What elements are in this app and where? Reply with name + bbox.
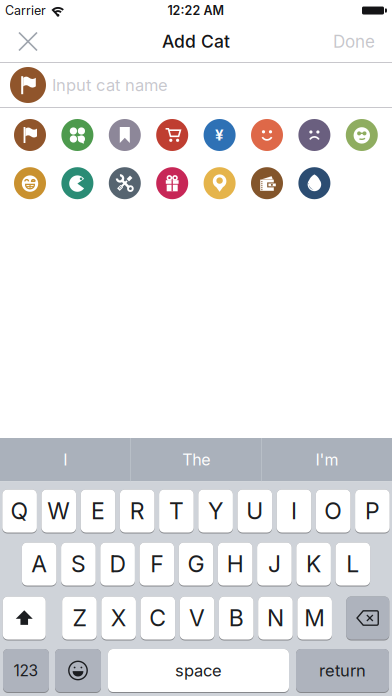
- button[interactable]: Z: [62, 596, 97, 640]
- staticText: C: [149, 604, 166, 632]
- staticText: T: [169, 497, 184, 525]
- button[interactable]: Cool face: [346, 119, 378, 151]
- button[interactable]: H: [218, 542, 252, 586]
- button[interactable]: P: [355, 489, 390, 533]
- staticText: F: [150, 550, 163, 578]
- staticText: space: [175, 660, 222, 680]
- button[interactable]: K: [296, 542, 331, 586]
- staticText: Y: [208, 497, 223, 525]
- button[interactable]: 123: [3, 649, 49, 693]
- button[interactable]: return: [296, 649, 389, 693]
- staticText: return: [319, 660, 366, 680]
- staticText: Done: [333, 31, 375, 52]
- staticText: P: [365, 497, 380, 525]
- staticText: M: [304, 604, 325, 632]
- button[interactable]: The: [131, 438, 261, 481]
- button[interactable]: Clover: [61, 119, 93, 151]
- staticText: I: [291, 497, 297, 525]
- staticText: K: [306, 550, 321, 578]
- staticText: Q: [11, 497, 29, 525]
- button[interactable]: space: [108, 649, 289, 693]
- button[interactable]: Yen: [204, 119, 236, 151]
- button[interactable]: V: [180, 596, 214, 640]
- button[interactable]: X: [101, 596, 136, 640]
- button[interactable]: N: [258, 596, 293, 640]
- button[interactable]: S: [61, 542, 96, 586]
- button[interactable]: Emoji: [55, 649, 101, 693]
- button[interactable]: E: [81, 489, 115, 533]
- staticText: Input cat name: [52, 75, 168, 95]
- staticText: A: [31, 550, 47, 578]
- button[interactable]: Shopping cart: [156, 119, 188, 151]
- button[interactable]: Tools: [109, 167, 141, 199]
- staticText: B: [229, 604, 244, 632]
- button[interactable]: Smile: [251, 119, 283, 151]
- button[interactable]: Q: [2, 489, 37, 533]
- button[interactable]: I'm: [262, 438, 392, 481]
- staticText: W: [47, 497, 70, 525]
- staticText: L: [346, 550, 359, 578]
- button[interactable]: Sad face: [298, 119, 330, 151]
- button[interactable]: A: [22, 542, 56, 586]
- button[interactable]: Location pin: [204, 167, 236, 199]
- button[interactable]: T: [159, 489, 194, 533]
- button[interactable]: I: [277, 489, 311, 533]
- button[interactable]: Close: [0, 21, 38, 61]
- button[interactable]: Gift: [156, 167, 188, 199]
- staticText: E: [91, 497, 105, 525]
- button[interactable]: J: [257, 542, 292, 586]
- button[interactable]: Input cat name: [0, 63, 392, 107]
- staticText: 123: [13, 661, 38, 680]
- staticText: U: [246, 497, 263, 525]
- staticText: Z: [72, 604, 86, 632]
- button[interactable]: Wallet: [251, 167, 283, 199]
- button[interactable]: Grinning face: [14, 167, 46, 199]
- button[interactable]: Delete: [346, 596, 389, 640]
- button[interactable]: Done: [333, 21, 392, 62]
- staticText: Add Cat: [162, 31, 230, 52]
- staticText: N: [267, 604, 284, 632]
- staticText: Carrier: [5, 3, 46, 18]
- staticText: ¥: [215, 126, 224, 144]
- staticText: G: [187, 550, 204, 578]
- staticText: S: [71, 550, 86, 578]
- button[interactable]: Flag: [14, 119, 46, 151]
- staticText: The: [182, 450, 210, 469]
- button[interactable]: R: [120, 489, 154, 533]
- button[interactable]: Y: [198, 489, 233, 533]
- staticText: V: [189, 604, 205, 632]
- button[interactable]: L: [335, 542, 370, 586]
- button[interactable]: Water drop: [298, 167, 330, 199]
- button[interactable]: B: [219, 596, 254, 640]
- staticText: H: [227, 550, 244, 578]
- button[interactable]: O: [316, 489, 350, 533]
- button[interactable]: Shift: [3, 596, 46, 640]
- staticText: I'm: [315, 450, 338, 469]
- button[interactable]: D: [100, 542, 135, 586]
- button[interactable]: G: [179, 542, 213, 586]
- staticText: R: [130, 497, 145, 525]
- button[interactable]: U: [237, 489, 272, 533]
- button[interactable]: I: [0, 438, 130, 481]
- button[interactable]: W: [41, 489, 76, 533]
- button[interactable]: C: [141, 596, 175, 640]
- button[interactable]: M: [297, 596, 332, 640]
- staticText: O: [324, 497, 342, 525]
- button[interactable]: Bookmark: [109, 119, 141, 151]
- staticText: X: [111, 604, 127, 632]
- button[interactable]: Pac-man: [61, 167, 93, 199]
- staticText: J: [268, 550, 281, 578]
- staticText: I: [63, 450, 67, 469]
- button[interactable]: F: [139, 542, 174, 586]
- staticText: 12:22 AM: [167, 3, 224, 18]
- staticText: D: [110, 550, 126, 578]
